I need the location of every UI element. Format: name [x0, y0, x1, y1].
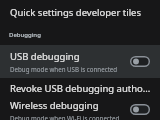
staticText: Debug mode when Wi-Fi is connected [10, 114, 120, 120]
button[interactable]: Revoke USB debugging authorizations [0, 78, 160, 99]
staticText: Wireless debugging [10, 99, 99, 112]
staticText: Revoke USB debugging authorizations [10, 82, 152, 95]
staticText: Debugging [9, 31, 41, 39]
staticText: Debug mode when USB is connected [10, 65, 118, 73]
button[interactable]: Toggle USB debugging [128, 54, 152, 69]
staticText: USB debugging [10, 50, 80, 63]
button[interactable]: USB debugging [0, 45, 160, 78]
button[interactable]: Wireless debugging [0, 99, 160, 120]
button[interactable]: Toggle Wireless debugging [128, 102, 152, 117]
staticText: Quick settings developer tiles [10, 6, 142, 19]
button[interactable]: Quick settings developer tiles [0, 0, 160, 24]
